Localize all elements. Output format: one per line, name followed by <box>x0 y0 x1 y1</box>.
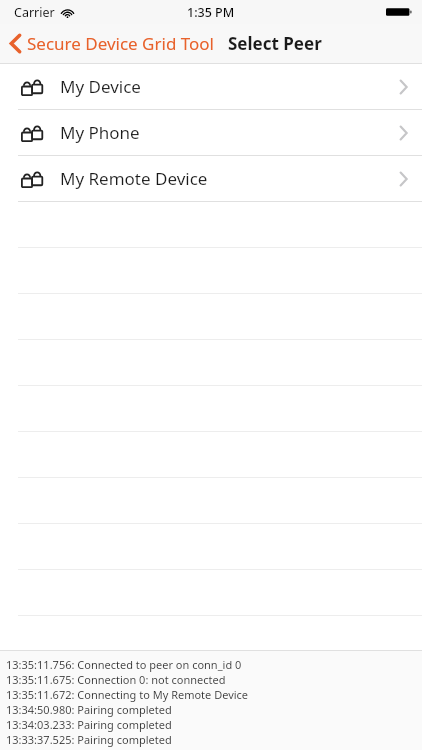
staticText: 13:33:37.525: Pairing completed <box>6 732 172 747</box>
staticText: Carrier <box>14 4 55 21</box>
staticText: My Phone <box>60 121 399 144</box>
staticText: My Remote Device <box>60 167 399 190</box>
staticText: My Device <box>60 75 399 98</box>
staticText: 13:34:03.233: Pairing completed <box>6 717 172 732</box>
staticText: 13:35:11.756: Connected to peer on conn_… <box>6 657 242 672</box>
other: Back <box>10 34 21 53</box>
button[interactable]: My Device <box>0 64 422 109</box>
button[interactable]: My Phone <box>0 110 422 155</box>
staticText: 1:35 PM <box>187 4 235 21</box>
button[interactable]: My Remote Device <box>0 156 422 201</box>
staticText: 13:35:11.675: Connection 0: not connecte… <box>6 672 226 687</box>
staticText: Select Peer <box>228 32 322 55</box>
staticText: Secure Device Grid Tool <box>27 32 214 55</box>
button[interactable]: Back <box>0 28 220 59</box>
staticText: 13:35:11.672: Connecting to My Remote De… <box>6 687 249 702</box>
staticText: 13:34:50.980: Pairing completed <box>6 702 172 717</box>
